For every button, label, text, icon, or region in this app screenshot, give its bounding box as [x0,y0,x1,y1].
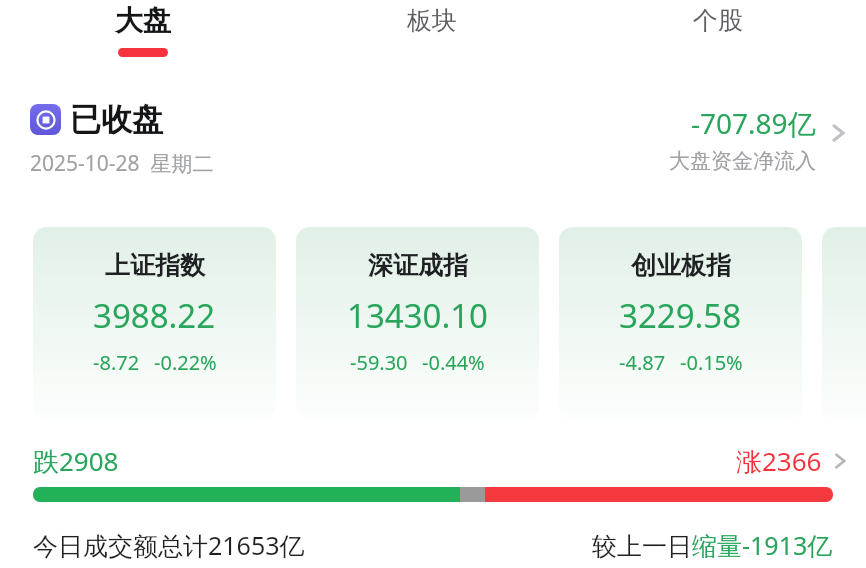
button[interactable]: 跌2908 [0,440,866,482]
staticText: -8.72 [93,349,140,376]
button[interactable]: 已收盘 [0,100,866,205]
staticText: 3988.22 [93,293,216,338]
staticText: 今日成交额总计21653亿 [33,528,305,562]
staticText: 跌2908 [33,443,119,479]
staticText: -0.15% [680,349,743,376]
staticText: 个股 [693,5,743,36]
staticText: 大盘 [115,3,171,38]
staticText: 上证指数 [105,250,205,281]
button[interactable]: 板块 [377,0,487,70]
staticText: 2025-10-28 星期二 [30,149,214,178]
staticText: -59.30 [350,349,408,376]
staticText: 大盘资金净流入 [669,148,816,174]
staticText: 创业板指 [631,250,731,281]
staticText: 深证成指 [368,250,468,281]
staticText: -0.44% [422,349,485,376]
other: 资金流入详情 [822,118,852,148]
button[interactable]: 创业板指 [559,227,802,420]
button[interactable]: 个股 [663,0,773,70]
button[interactable]: 科创50 [822,227,866,420]
button[interactable]: 大盘 [88,0,198,70]
staticText: -707.89亿 [691,104,816,142]
button[interactable]: 上证指数 [33,227,276,420]
staticText: 涨2366 [736,443,822,479]
button[interactable]: 深证成指 [296,227,539,420]
staticText: 3229.58 [619,293,742,338]
staticText: 已收盘 [70,100,163,139]
staticText: 板块 [407,5,457,36]
staticText: -4.87 [619,349,666,376]
staticText: 较上一日缩量-1913亿 [592,528,833,562]
staticText: 13430.10 [347,293,488,338]
staticText: -0.22% [154,349,217,376]
